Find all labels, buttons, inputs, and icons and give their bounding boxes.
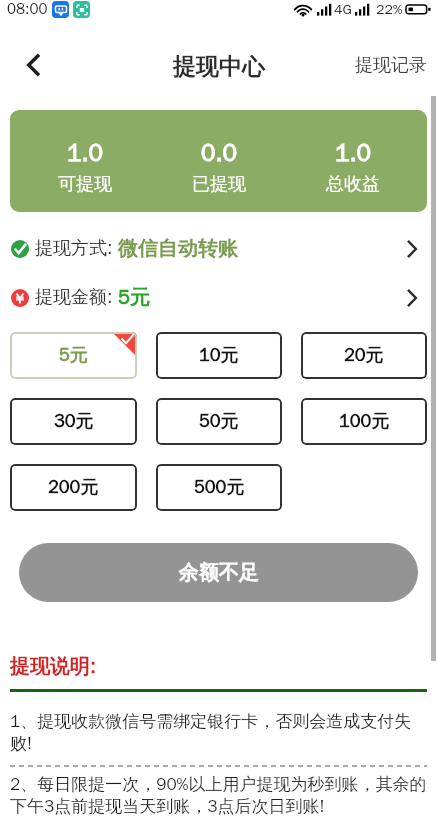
staticText: 提现金额: [35, 286, 113, 309]
button[interactable]: 余额不足 [19, 543, 418, 602]
staticText: 500元 [194, 476, 245, 499]
button[interactable]: 20元 [301, 332, 427, 379]
button[interactable]: 100元 [301, 398, 427, 445]
button[interactable]: 50元 [156, 398, 282, 445]
staticText: 可提现 [58, 173, 112, 196]
staticText: 已提现 [192, 173, 246, 196]
button[interactable]: 200元 [10, 464, 137, 511]
staticText: 提现中心 [173, 52, 265, 81]
staticText: 100元 [339, 410, 390, 433]
button[interactable]: 500元 [156, 464, 282, 511]
staticText: 总收益 [326, 173, 380, 196]
staticText: 提现记录 [355, 54, 427, 77]
staticText: 5元 [59, 344, 88, 367]
staticText: 微信自动转账 [118, 236, 238, 261]
button[interactable]: 提现记录 [345, 44, 437, 87]
button[interactable]: 提现方式: [0, 224, 437, 273]
staticText: 0.0 [201, 138, 237, 168]
button[interactable]: 5元 [10, 332, 137, 379]
staticText: 提现方式: [35, 237, 113, 260]
staticText: 50元 [199, 410, 239, 433]
staticText: 08:00 [7, 0, 48, 19]
staticText: 1.0 [67, 138, 103, 168]
staticText: 5元 [118, 285, 150, 310]
button[interactable]: Back [13, 44, 55, 86]
staticText: 提现说明: [10, 654, 96, 679]
button[interactable]: 30元 [10, 398, 137, 445]
button[interactable]: 10元 [156, 332, 282, 379]
staticText: 2、每日限提一次，90%以上用户提现为秒到账，其余的 下午3点前提现当天到账，3… [10, 774, 427, 817]
staticText: 10元 [199, 344, 239, 367]
button[interactable]: ¥ [0, 273, 437, 322]
staticText: 30元 [54, 410, 94, 433]
staticText: ¥ [16, 290, 24, 306]
staticText: 1、提现收款微信号需绑定银行卡，否则会造成支付失 败! [10, 711, 412, 754]
staticText: 1.0 [335, 138, 371, 168]
staticText: 4G [334, 1, 352, 19]
staticText: 200元 [48, 476, 99, 499]
staticText: 余额不足 [179, 560, 259, 585]
staticText: 20元 [344, 344, 384, 367]
staticText: 22% [376, 1, 403, 19]
